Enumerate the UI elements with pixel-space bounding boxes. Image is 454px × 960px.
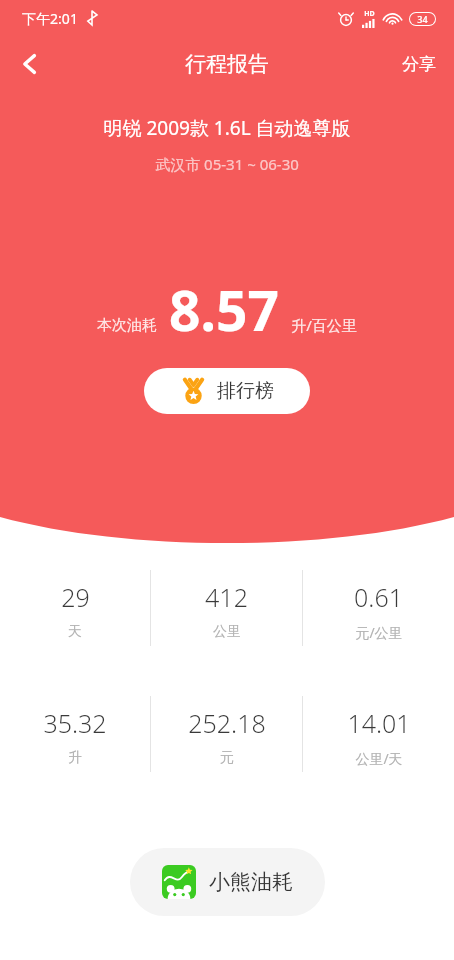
staticText: 公里/天 bbox=[355, 749, 403, 768]
staticText: 本次油耗 bbox=[97, 316, 157, 335]
staticText: 下午2:01 bbox=[22, 9, 78, 28]
staticText: 0.61 bbox=[354, 580, 403, 614]
staticText: HD bbox=[364, 9, 375, 19]
staticText: 明锐 2009款 1.6L 自动逸尊版 bbox=[103, 115, 351, 141]
staticText: 29 bbox=[61, 580, 90, 614]
staticText: 小熊油耗 bbox=[209, 869, 293, 895]
staticText: 252.18 bbox=[188, 706, 266, 740]
staticText: 行程报告 bbox=[185, 51, 269, 77]
staticText: 35.32 bbox=[43, 706, 107, 740]
staticText: 分享 bbox=[402, 54, 436, 75]
staticText: 升/百公里 bbox=[291, 315, 357, 335]
button[interactable]: 小熊油耗 bbox=[130, 848, 325, 916]
staticText: 8.57 bbox=[169, 272, 279, 347]
staticText: 元 bbox=[220, 749, 234, 767]
staticText: 14.01 bbox=[347, 706, 411, 740]
staticText: 天 bbox=[68, 623, 82, 641]
staticText: 412 bbox=[205, 580, 248, 614]
staticText: 34 bbox=[417, 13, 428, 25]
button[interactable]: 排行榜 bbox=[144, 368, 310, 414]
button[interactable]: 分享 bbox=[384, 42, 454, 87]
staticText: 元/公里 bbox=[355, 623, 403, 642]
staticText: 升 bbox=[68, 749, 82, 767]
staticText: 武汉市 05-31 ~ 06-30 bbox=[155, 154, 299, 174]
staticText: 公里 bbox=[213, 623, 241, 641]
staticText: 排行榜 bbox=[217, 379, 274, 403]
button[interactable]: Back bbox=[6, 40, 54, 88]
